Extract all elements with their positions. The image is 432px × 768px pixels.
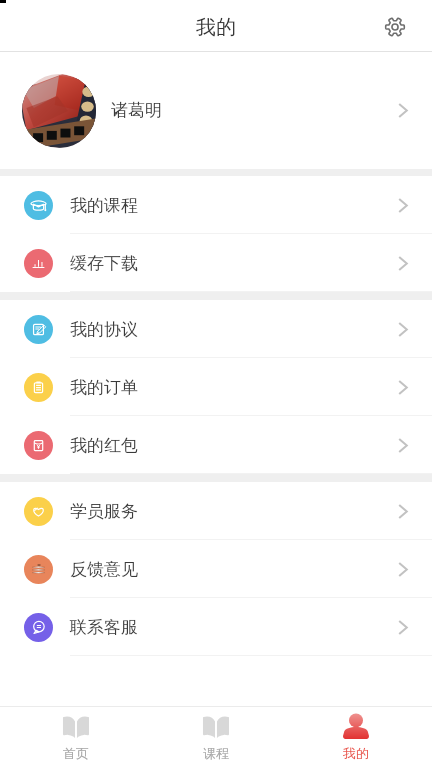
staticText: 我的订单 [70, 377, 138, 398]
staticText: 首页 [63, 745, 89, 761]
staticText: 我的协议 [70, 319, 138, 340]
button[interactable]: 我的订单 [0, 358, 432, 416]
staticText: 我的红包 [70, 435, 138, 456]
button[interactable]: 诸葛明 [0, 52, 432, 169]
button[interactable]: 课程 [146, 707, 286, 768]
button[interactable]: 我的课程 [0, 176, 432, 234]
staticText: 我的 [196, 15, 236, 40]
button[interactable]: 我的红包 [0, 416, 432, 474]
button[interactable]: 反馈意见 [0, 540, 432, 598]
staticText: 课程 [203, 745, 229, 761]
staticText: 学员服务 [70, 501, 138, 522]
button[interactable]: 首页 [6, 707, 146, 768]
button[interactable]: 学员服务 [0, 482, 432, 540]
button[interactable]: 我的协议 [0, 300, 432, 358]
staticText: 联系客服 [70, 617, 138, 638]
button[interactable]: Settings [377, 8, 413, 44]
button[interactable]: 缓存下载 [0, 234, 432, 292]
staticText: 反馈意见 [70, 559, 138, 580]
staticText: 我的 [343, 745, 369, 761]
staticText: 我的课程 [70, 195, 138, 216]
button[interactable]: 我的 [286, 707, 426, 768]
staticText: 诸葛明 [111, 100, 162, 121]
button[interactable]: 联系客服 [0, 598, 432, 656]
staticText: 缓存下载 [70, 253, 138, 274]
